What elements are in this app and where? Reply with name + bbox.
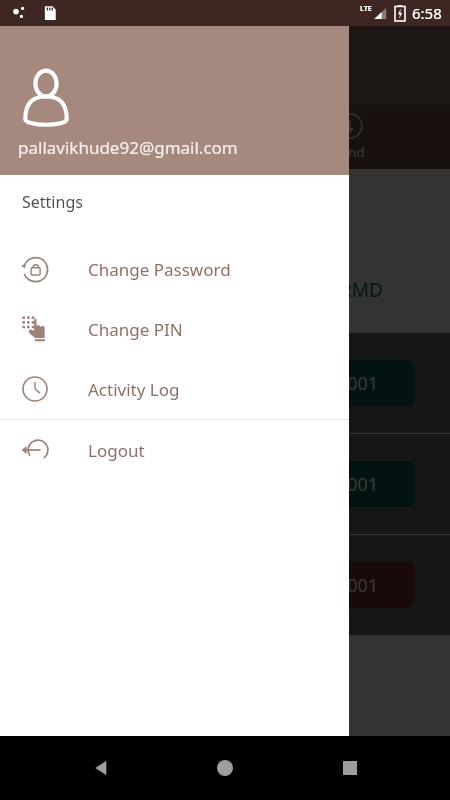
button[interactable]: 0001 [0,333,450,433]
staticText: 0001 [337,573,379,598]
button[interactable]: Change PIN [0,299,349,359]
staticText: Send [85,143,116,161]
staticText: 6:58 [412,3,442,23]
staticText: 0001 [337,371,379,396]
staticText: pallavikhude92@gmail.com [18,136,238,159]
button[interactable]: Activity Log [0,359,349,419]
staticText: LTE [360,4,372,14]
button[interactable]: Recent apps [326,744,374,792]
staticText: Activity Log [88,378,180,401]
staticText: 0001 [337,472,379,497]
button[interactable]: Change Password [0,239,349,299]
staticText: Settings [22,191,83,213]
button[interactable]: Back [77,744,125,792]
button[interactable]: 0001 [0,535,450,635]
staticText: Send [334,143,365,161]
staticText: Logout [88,439,145,462]
button[interactable]: Home [201,744,249,792]
button[interactable]: Logout [0,420,349,480]
button[interactable]: 0001 [0,434,450,534]
staticText: Change Password [88,258,231,281]
staticText: Change PIN [88,318,183,341]
staticText: RMD [340,277,383,303]
staticText: Receive [202,143,249,161]
